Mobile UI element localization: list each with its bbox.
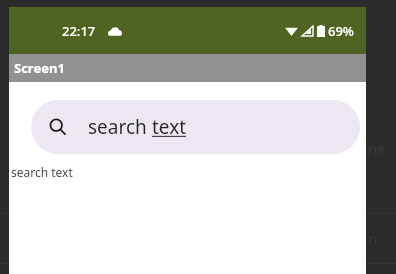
staticText: 22:17 — [62, 22, 96, 40]
staticText: text — [152, 114, 187, 140]
other: Search — [48, 117, 68, 137]
staticText: ne — [368, 138, 386, 158]
staticText: Screen1 — [14, 59, 65, 77]
staticText: search — [88, 114, 152, 140]
button[interactable]: Search — [31, 100, 360, 154]
staticText: n — [368, 228, 378, 248]
staticText: 69% — [328, 22, 354, 40]
button[interactable]: Screen1 — [9, 54, 366, 82]
staticText: search text — [11, 164, 73, 180]
